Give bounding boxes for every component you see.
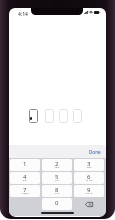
button[interactable]: 8: [42, 185, 72, 197]
staticText: 0: [55, 199, 59, 207]
button[interactable]: [45, 109, 54, 123]
staticText: 8: [55, 186, 59, 194]
button[interactable]: 2: [42, 159, 72, 171]
button[interactable]: [59, 109, 68, 123]
staticText: 9: [87, 186, 91, 194]
staticText: 3: [87, 160, 91, 168]
staticText: DEF: [87, 166, 92, 169]
staticText: PQRS: [22, 192, 29, 195]
button[interactable]: 4: [10, 172, 40, 184]
staticText: 5: [55, 173, 59, 181]
staticText: Done: [89, 149, 101, 155]
button[interactable]: 7: [10, 185, 40, 197]
staticText: GHI: [22, 179, 28, 182]
button[interactable]: 5: [42, 172, 72, 184]
staticText: 6: [87, 173, 91, 181]
button[interactable]: 9: [74, 185, 104, 197]
staticText: MNO: [86, 179, 93, 182]
button[interactable]: 6: [74, 172, 104, 184]
button[interactable]: 0: [42, 198, 72, 210]
button[interactable]: [73, 109, 82, 123]
staticText: 1: [23, 160, 27, 168]
staticText: JKL: [55, 179, 60, 182]
staticText: 4:14: [18, 11, 28, 18]
staticText: TUV: [54, 192, 60, 195]
button[interactable]: [29, 109, 38, 123]
staticText: 2: [55, 160, 59, 168]
button[interactable]: 1: [10, 159, 40, 171]
button[interactable]: Done: [89, 149, 101, 155]
staticText: WXYZ: [85, 192, 93, 195]
staticText: 7: [23, 186, 27, 194]
button[interactable]: 3: [74, 159, 104, 171]
staticText: ABC: [54, 166, 60, 169]
button[interactable]: Delete: [74, 198, 104, 210]
staticText: 4: [23, 173, 27, 181]
